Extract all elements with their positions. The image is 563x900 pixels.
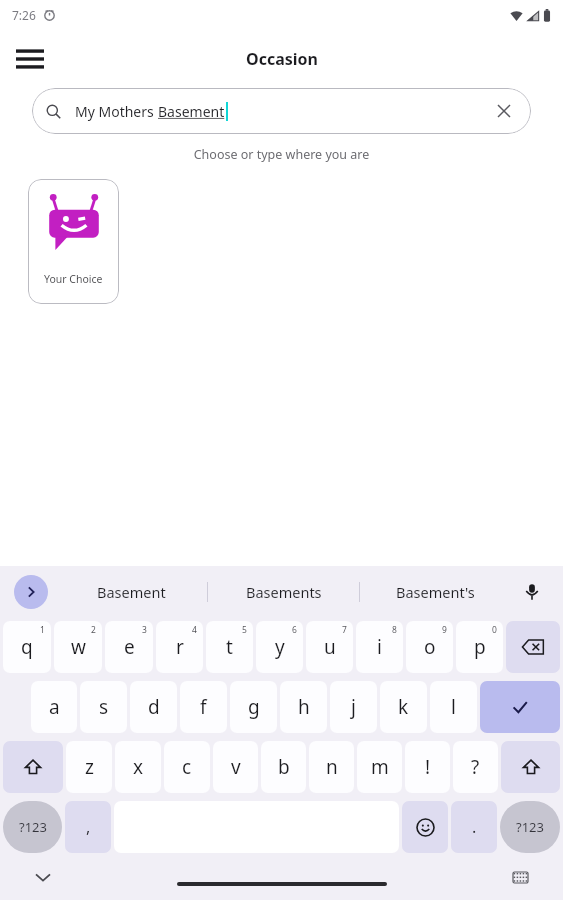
staticText: 6 [292,624,297,636]
button[interactable]: o [406,621,453,673]
button[interactable]: q [3,621,51,673]
staticText: f [200,694,207,720]
button[interactable]: g [230,681,277,733]
staticText: 5 [242,624,247,636]
staticText: j [351,694,356,720]
staticText: Basement [97,582,166,602]
staticText: p [474,634,486,660]
button[interactable]: . [451,801,497,853]
staticText: s [99,694,109,720]
staticText: o [424,634,436,660]
button[interactable]: Enter [480,681,560,733]
staticText: m [371,754,389,780]
button[interactable]: w [54,621,102,673]
button[interactable]: m [357,741,402,793]
staticText: r [176,634,184,660]
button[interactable]: e [105,621,153,673]
button[interactable]: ?123 [500,801,560,853]
button[interactable]: Switch keyboard [503,860,537,894]
button[interactable]: v [213,741,258,793]
button[interactable]: My Mothers [32,88,531,134]
button[interactable]: Emoji [402,801,448,853]
staticText: . [472,816,477,838]
button[interactable]: s [80,681,127,733]
staticText: q [21,634,33,660]
staticText: ?123 [19,818,47,836]
staticText: 3 [142,624,147,636]
staticText: 9 [442,624,447,636]
staticText: ? [471,754,480,780]
staticText: Your Choice [44,272,103,286]
staticText: k [398,694,409,720]
button[interactable]: Basement's [360,572,511,612]
button[interactable]: Voice input [515,575,549,609]
staticText: 1 [40,624,45,636]
button[interactable]: h [280,681,327,733]
staticText: x [133,754,144,780]
button[interactable]: , [65,801,111,853]
button[interactable]: Basement [56,572,207,612]
staticText: t [226,634,233,660]
button[interactable]: r [156,621,203,673]
staticText: 0 [492,624,497,636]
staticText: 7 [342,624,347,636]
staticText: , [86,816,91,838]
button[interactable]: z [66,741,112,793]
staticText: g [248,694,260,720]
staticText: Occasion [246,48,318,70]
button[interactable]: a [31,681,77,733]
staticText: Basement [158,102,225,121]
staticText: ?123 [516,818,544,836]
button[interactable]: x [115,741,161,793]
staticText: a [49,694,60,720]
button[interactable]: ? [453,741,498,793]
button[interactable]: b [261,741,306,793]
staticText: 2 [91,624,96,636]
staticText: y [275,634,285,660]
staticText: c [182,754,192,780]
staticText: 7:26 [12,7,36,23]
staticText: 4 [192,624,197,636]
staticText: Basements [246,582,322,602]
button[interactable]: y [256,621,303,673]
button[interactable]: p [456,621,503,673]
button[interactable]: j [330,681,377,733]
staticText: w [71,634,86,660]
button[interactable]: f [180,681,227,733]
button[interactable]: ! [405,741,450,793]
staticText: h [298,694,310,720]
button[interactable]: Open navigation menu [6,35,54,83]
staticText: i [377,634,382,660]
button[interactable]: u [306,621,353,673]
staticText: u [324,634,336,660]
button[interactable]: Shift right [501,741,560,793]
button[interactable]: Your Choice [28,179,119,304]
button[interactable]: i [356,621,403,673]
button[interactable]: l [430,681,477,733]
staticText: n [326,754,338,780]
button[interactable]: n [309,741,354,793]
button[interactable]: Basements [208,572,359,612]
staticText: ! [425,754,431,780]
button[interactable]: Clear search text [491,98,517,124]
button[interactable]: t [206,621,253,673]
button[interactable]: Hide keyboard [26,860,60,894]
button[interactable]: ?123 [3,801,62,853]
staticText: e [124,634,135,660]
staticText: My Mothers [75,102,158,121]
button[interactable]: c [164,741,210,793]
button[interactable]: d [130,681,177,733]
staticText: d [148,694,160,720]
button[interactable]: Backspace [506,621,560,673]
staticText: l [451,694,456,720]
button[interactable]: k [380,681,427,733]
staticText: Basement's [396,582,475,602]
staticText: Choose or type where you are [0,146,563,163]
staticText: 8 [392,624,397,636]
staticText: v [231,754,241,780]
staticText: z [85,754,94,780]
button[interactable]: More suggestions [14,575,48,609]
staticText: b [278,754,290,780]
button[interactable]: Shift [3,741,63,793]
